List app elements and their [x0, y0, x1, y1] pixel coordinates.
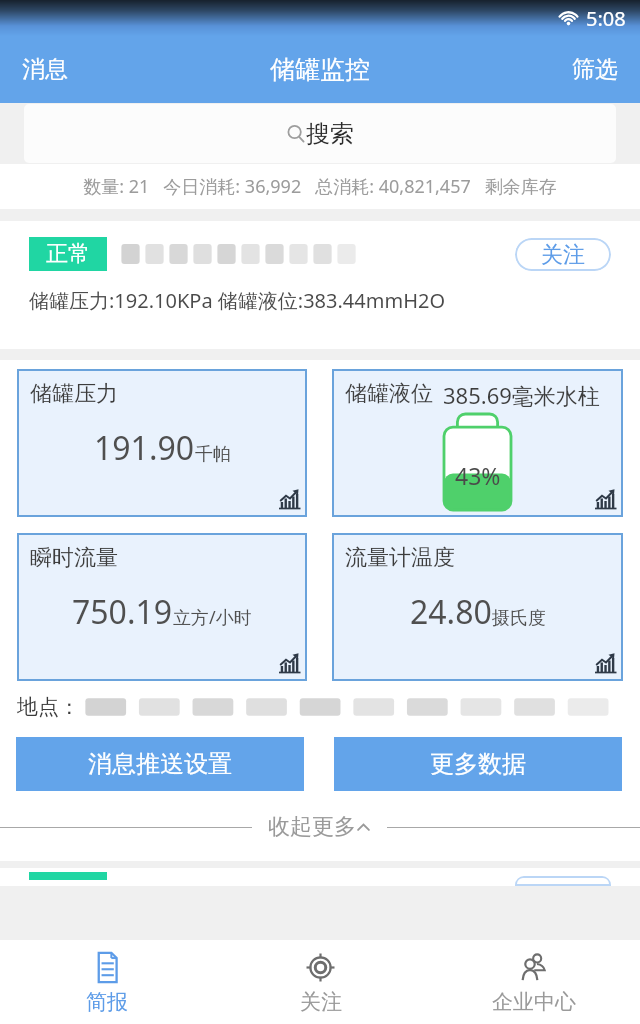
staticText: 191.90 [94, 426, 195, 470]
staticText: 消息 [22, 55, 68, 84]
staticText: 385.69毫米水柱 [443, 380, 600, 410]
button[interactable]: 搜索 [24, 104, 616, 163]
staticText: 正常 [46, 240, 90, 268]
button[interactable]: 查看趋势图 [593, 652, 618, 677]
button[interactable]: 消息 [0, 43, 90, 96]
staticText: 摄氏度 [492, 607, 546, 630]
staticText: 千帕 [195, 443, 231, 466]
button[interactable]: 查看趋势图 [277, 488, 302, 513]
staticText: 5:08 [586, 5, 626, 32]
staticText: 收起更多 [268, 813, 356, 841]
button[interactable]: 更多数据 [334, 737, 622, 791]
staticText: 关注 [300, 989, 342, 1015]
button[interactable]: 查看趋势图 [277, 652, 302, 677]
button[interactable]: 筛选 [550, 43, 640, 96]
staticText: 立方/小时 [173, 605, 252, 630]
staticText: 筛选 [572, 55, 618, 84]
button[interactable]: 储罐液位 [332, 369, 623, 517]
button[interactable]: 正常 [29, 237, 107, 271]
staticText: 储罐压力:192.10KPa 储罐液位:383.44mmH2O [29, 287, 446, 314]
staticText: 24.80 [410, 590, 492, 634]
other: 关注 [303, 950, 338, 985]
other: 简报 [90, 950, 125, 985]
staticText: 储罐压力 [30, 380, 118, 408]
button[interactable]: 流量计温度 [332, 533, 623, 681]
staticText: 43% [455, 460, 501, 491]
staticText: 企业中心 [492, 989, 576, 1015]
button[interactable]: 查看趋势图 [593, 488, 618, 513]
button[interactable]: 关注 [214, 940, 427, 1024]
staticText: 地点： [17, 694, 80, 720]
button[interactable]: 瞬时流量 [17, 533, 307, 681]
staticText: 更多数据 [430, 749, 526, 779]
staticText: 储罐监控 [270, 54, 370, 85]
staticText: 消息推送设置 [88, 749, 232, 779]
staticText: 储罐液位 [345, 380, 433, 408]
staticText: 搜索 [306, 119, 354, 149]
staticText: 简报 [86, 989, 128, 1015]
button[interactable]: 简报 [0, 940, 214, 1024]
button[interactable]: 关注 [515, 238, 611, 271]
staticText: 数量: 21 今日消耗: 36,992 总消耗: 40,821,457 剩余库存 [83, 174, 557, 199]
staticText: 流量计温度 [345, 544, 455, 572]
staticText: 关注 [541, 241, 585, 269]
staticText: 750.19 [72, 590, 173, 634]
button[interactable]: 收起更多 [0, 813, 640, 841]
button[interactable]: 储罐压力 [17, 369, 307, 517]
button[interactable]: 企业中心 [427, 940, 640, 1024]
other: 企业中心 [516, 950, 551, 985]
button[interactable]: 消息推送设置 [16, 737, 304, 791]
staticText: 瞬时流量 [30, 544, 118, 572]
